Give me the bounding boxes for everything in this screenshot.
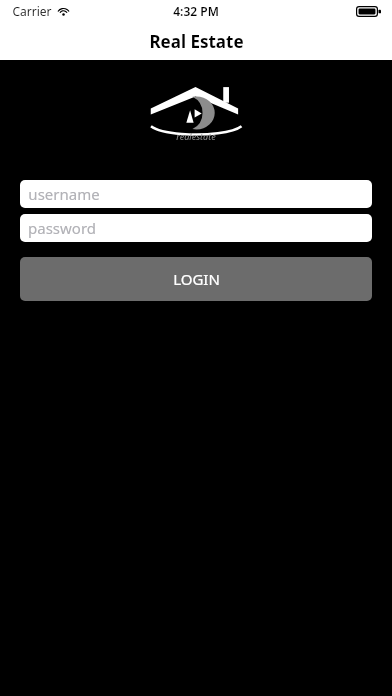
button[interactable]: password: [20, 214, 372, 242]
staticText: realestate: [176, 130, 216, 142]
button[interactable]: username: [20, 180, 372, 208]
button[interactable]: LOGIN: [20, 257, 372, 301]
staticText: LOGIN: [173, 269, 220, 289]
staticText: 4:32 PM: [173, 3, 219, 19]
staticText: password: [28, 218, 96, 238]
staticText: username: [28, 184, 100, 204]
staticText: Carrier: [12, 3, 52, 19]
staticText: Real Estate: [149, 30, 244, 53]
